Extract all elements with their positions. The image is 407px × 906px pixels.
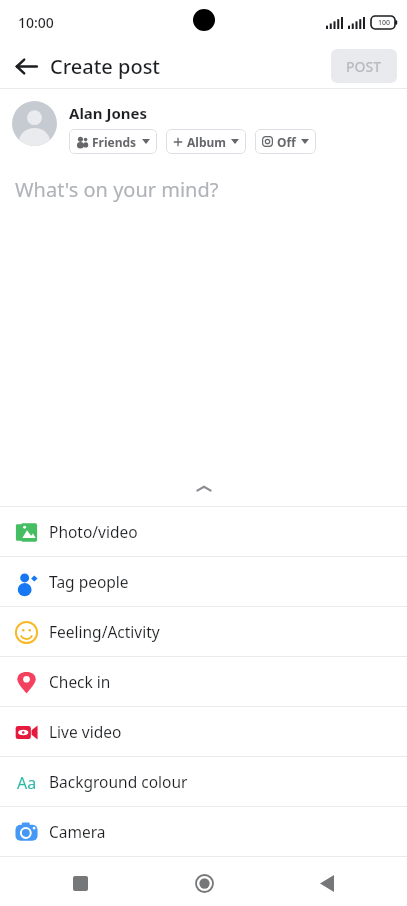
button[interactable]: Aa	[0, 757, 407, 806]
staticText: 100	[378, 18, 391, 28]
button[interactable]: Album	[166, 129, 246, 154]
button[interactable]: Collapse	[0, 472, 407, 506]
staticText: Create post	[50, 53, 161, 80]
staticText: Background colour	[49, 771, 188, 792]
button[interactable]	[12, 101, 57, 146]
button[interactable]: Photo/video	[0, 507, 407, 556]
staticText: Feeling/Activity	[49, 621, 160, 642]
staticText: Check in	[49, 671, 111, 692]
staticText: Camera	[49, 821, 106, 842]
button[interactable]: Check in	[0, 657, 407, 706]
staticText: Friends	[92, 134, 137, 150]
button[interactable]: Friends	[69, 129, 157, 154]
button[interactable]: Camera	[0, 807, 407, 856]
staticText: Album	[187, 134, 226, 150]
button[interactable]: GIF	[0, 857, 407, 906]
button[interactable]: Tag people	[0, 557, 407, 606]
staticText: POST	[346, 57, 382, 76]
staticText: Tag people	[49, 571, 129, 592]
staticText: GIF	[49, 871, 74, 892]
button[interactable]: POST	[331, 49, 397, 83]
staticText: Alan Jones	[69, 103, 148, 123]
button[interactable]: Off	[255, 129, 316, 154]
button[interactable]: Feeling/Activity	[0, 607, 407, 656]
staticText: Off	[277, 134, 296, 150]
button[interactable]: Back	[307, 863, 347, 903]
staticText: 10:00	[18, 13, 54, 32]
button[interactable]: Recents	[60, 863, 100, 903]
staticText: Live video	[49, 721, 122, 742]
button[interactable]: Home	[184, 863, 224, 903]
staticText: What's on your mind?	[15, 176, 219, 203]
button[interactable]: Back	[6, 46, 46, 86]
button[interactable]: Live video	[0, 707, 407, 756]
staticText: Photo/video	[49, 521, 138, 542]
staticText: Aa	[17, 772, 37, 794]
